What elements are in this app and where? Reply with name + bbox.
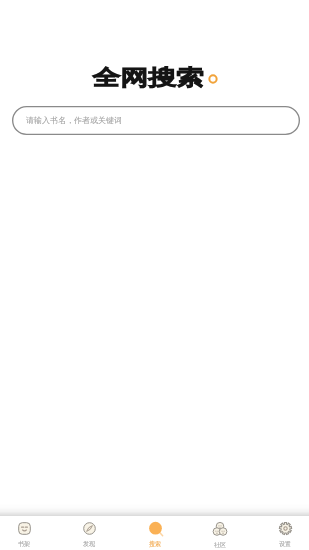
staticText: 设置 (279, 540, 291, 548)
staticText: 社区 (214, 541, 226, 549)
staticText: 书架 (18, 540, 30, 548)
staticText: 请输入书名，作者或关键词 (26, 115, 122, 125)
staticText: 全网搜索 (92, 64, 204, 91)
staticText: 全网搜索 (92, 64, 204, 91)
button[interactable]: Discover (75, 516, 103, 550)
button[interactable]: Settings (271, 516, 299, 550)
button[interactable]: Community (206, 516, 234, 550)
staticText: 发现 (83, 540, 95, 548)
button[interactable]: 请输入书名，作者或关键词 (12, 106, 300, 135)
button[interactable]: Bookshelf (10, 516, 38, 550)
staticText: 搜索 (149, 540, 161, 548)
button[interactable]: Search (141, 516, 169, 550)
